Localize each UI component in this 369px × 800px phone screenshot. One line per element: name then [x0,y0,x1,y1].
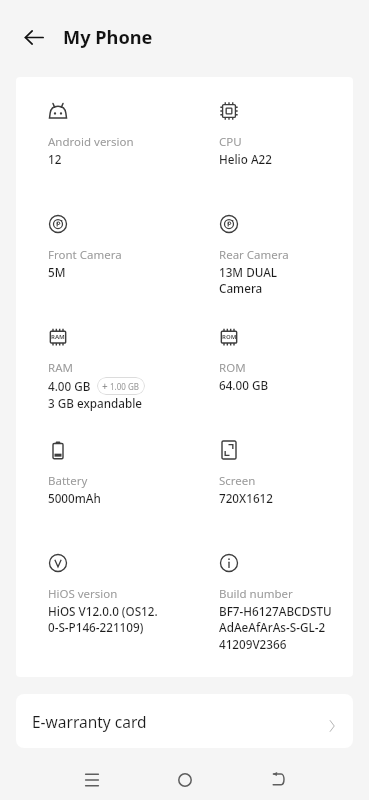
button[interactable]: Back [13,16,56,59]
staticText: HiOS version [48,586,118,602]
staticText: Android version [48,134,134,150]
staticText: Rear Camera [219,247,289,263]
staticText: My Phone [63,25,153,50]
staticText: 5M [48,264,66,280]
staticText: 12 [48,151,62,167]
staticText: ROM [219,360,246,376]
button[interactable]: E-warranty card [16,694,353,748]
staticText: 4.00 GB [48,378,91,394]
staticText: 64.00 GB [219,377,269,393]
staticText: 3 GB expandable [48,395,143,411]
staticText: 13M DUAL Camera [219,264,278,297]
staticText: 1.00 GB [110,381,139,392]
staticText: 720X1612 [219,490,273,506]
staticText: ROM [222,333,237,341]
staticText: 5000mAh [48,490,101,506]
staticText: BF7-H6127ABCDSTU AdAeAfArAs-S-GL-2 41209… [219,603,332,653]
staticText: Build number [219,586,293,602]
button[interactable]: Home [162,759,208,800]
staticText: Battery [48,473,88,489]
staticText: + [102,379,108,393]
staticText: E-warranty card [32,711,147,732]
staticText: Screen [219,473,256,489]
staticText: HiOS V12.0.0 (OS12. 0-S-P146-221109) [48,603,158,636]
staticText: CPU [219,134,242,150]
staticText: RAM [48,360,73,376]
button[interactable]: Recent apps [69,759,115,800]
staticText: Front Camera [48,247,122,263]
staticText: RAM [51,333,65,341]
button[interactable]: Back [255,759,301,800]
staticText: Helio A22 [219,151,272,167]
